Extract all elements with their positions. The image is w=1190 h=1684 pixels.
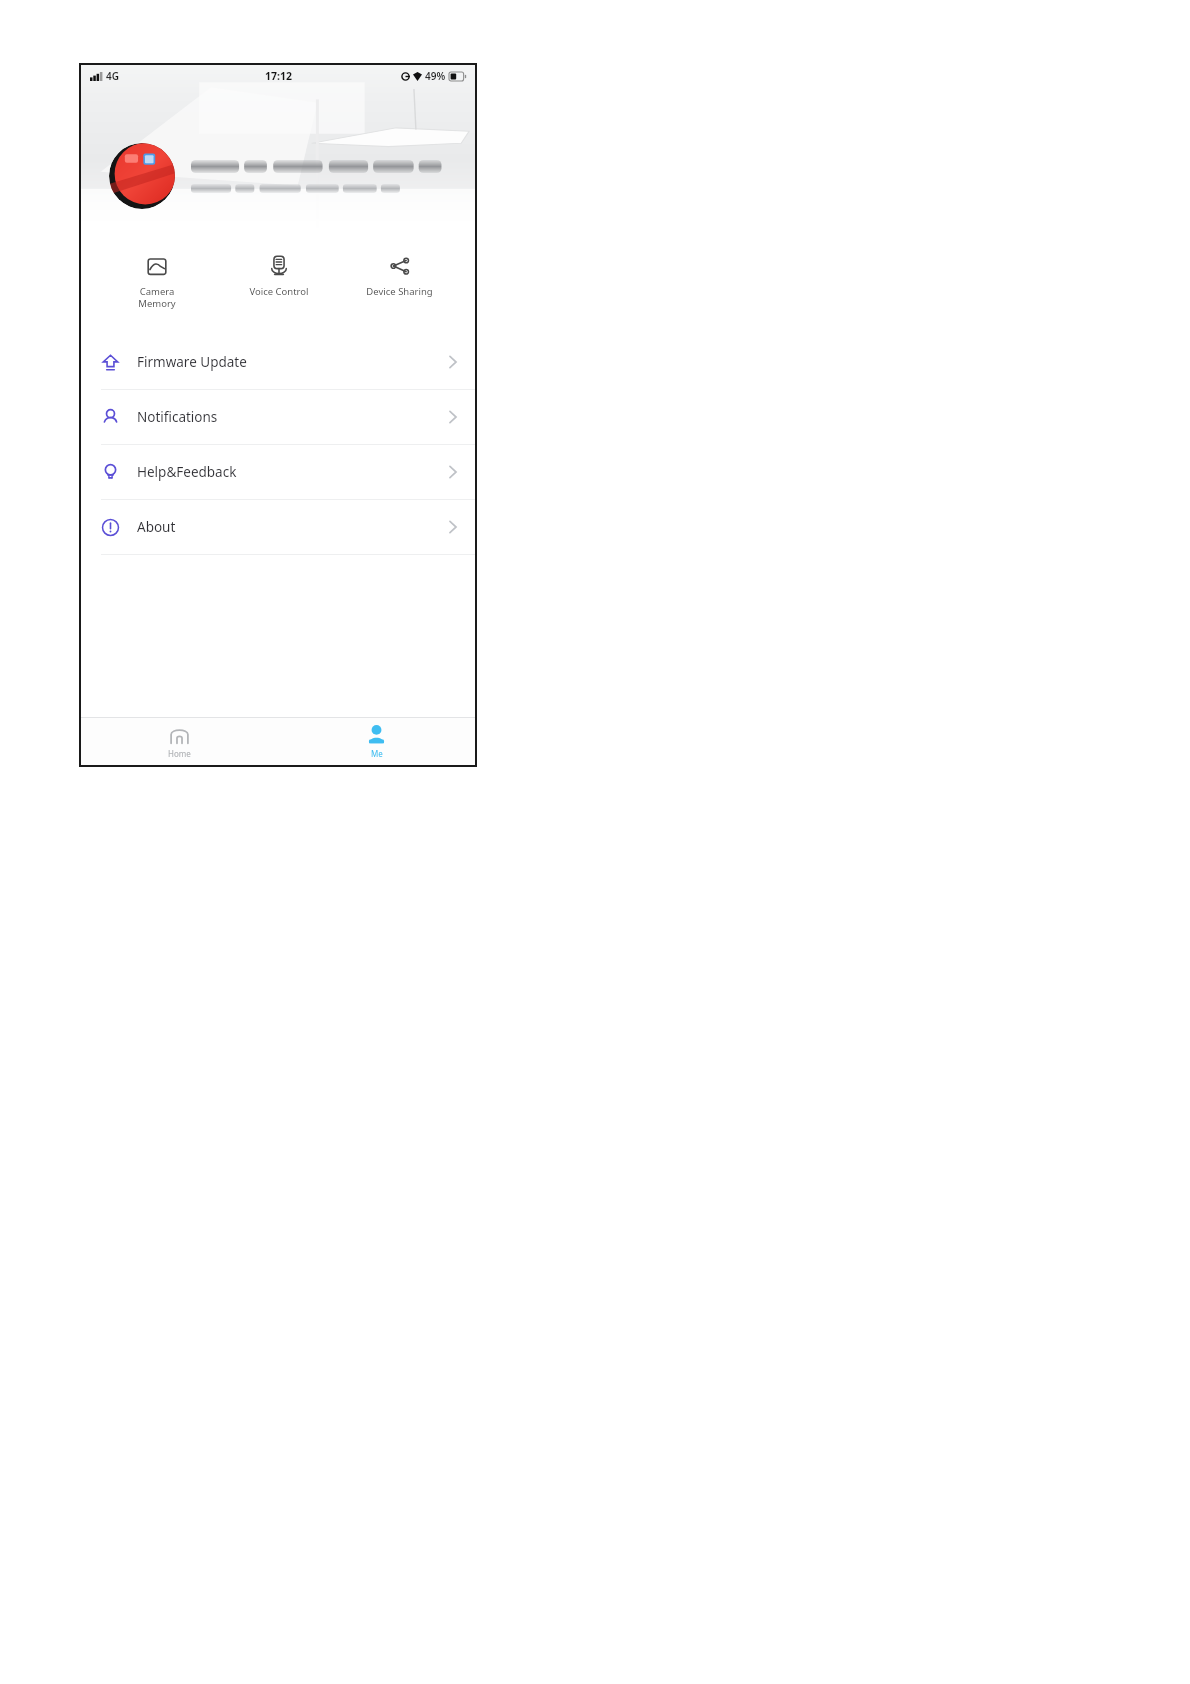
staticText: Notifications	[137, 408, 449, 426]
staticText: 4G	[106, 69, 119, 83]
button[interactable]: Device Sharing	[339, 255, 460, 298]
staticText: Help&Feedback	[137, 463, 449, 481]
staticText: 17:12	[265, 69, 292, 83]
button[interactable]: About	[81, 500, 475, 554]
staticText: Me	[371, 748, 383, 759]
button[interactable]: Me	[278, 718, 475, 765]
button[interactable]: Firmware Update	[81, 335, 475, 389]
staticText: 49%	[425, 69, 446, 83]
staticText: Home	[168, 748, 191, 759]
button[interactable]: Help&Feedback	[81, 445, 475, 499]
staticText: Firmware Update	[137, 353, 449, 371]
button[interactable]: Home	[81, 718, 278, 765]
staticText: About	[137, 518, 449, 536]
button[interactable]: Voice Control	[218, 255, 339, 298]
staticText: Voice Control	[249, 285, 309, 298]
button[interactable]	[109, 143, 455, 209]
button[interactable]: Camera Memory	[96, 255, 218, 310]
button[interactable]: Notifications	[81, 390, 475, 444]
staticText: Camera Memory	[138, 285, 176, 310]
staticText: Device Sharing	[366, 285, 433, 298]
